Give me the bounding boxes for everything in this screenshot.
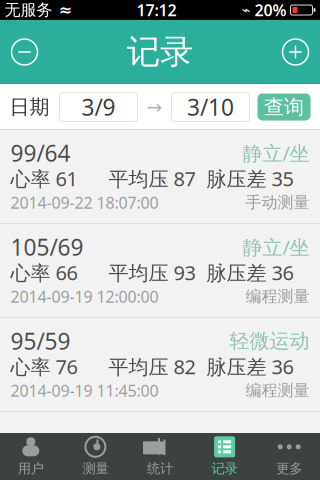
staticText: 2014-09-19 11:45:00 <box>10 380 158 401</box>
button[interactable]: 更多 <box>257 433 320 480</box>
staticText: 静立/坐 <box>242 140 309 166</box>
staticText: 统计 <box>147 460 173 477</box>
staticText: 轻微运动 <box>229 329 309 353</box>
button[interactable]: Add record <box>273 30 317 74</box>
staticText: 脉压差 35 <box>206 165 293 192</box>
staticText: 编程测量 <box>245 287 309 306</box>
staticText: 99/64 <box>10 138 70 168</box>
staticText: 无服务 <box>4 0 52 20</box>
staticText: 手动测量 <box>245 193 309 212</box>
staticText: 105/69 <box>10 232 83 262</box>
button[interactable]: 用户 <box>0 433 63 480</box>
staticText: 记录 <box>127 31 193 72</box>
staticText: 20% <box>250 0 286 21</box>
staticText: 95/59 <box>10 326 70 356</box>
button[interactable]: 查询 <box>257 93 310 120</box>
staticText: ⌁ <box>241 2 250 18</box>
staticText: 日期 <box>9 95 49 119</box>
staticText: 测量 <box>82 460 108 477</box>
staticText: 17:12 <box>136 0 176 21</box>
staticText: 静立/坐 <box>242 234 309 260</box>
button[interactable]: 105/69 <box>0 224 320 318</box>
button[interactable]: 99/64 <box>0 130 320 224</box>
staticText: 用户 <box>18 460 44 477</box>
staticText: 编程测量 <box>245 381 309 400</box>
button[interactable]: 测量 <box>63 433 128 480</box>
staticText: 平均压 93 <box>108 259 195 286</box>
staticText: 2014-09-19 12:00:00 <box>10 286 158 307</box>
staticText: 心率 76 <box>10 353 77 380</box>
staticText: 2014-09-22 18:07:00 <box>10 192 158 213</box>
staticText: 心率 66 <box>10 259 77 286</box>
staticText: 平均压 87 <box>108 165 195 192</box>
button[interactable]: 3/9 <box>59 92 137 121</box>
staticText: → <box>146 96 162 118</box>
staticText: 3/9 <box>81 92 115 122</box>
staticText: 脉压差 36 <box>206 353 293 380</box>
staticText: 心率 61 <box>10 165 77 192</box>
button[interactable]: 统计 <box>128 433 192 480</box>
button[interactable]: Remove record <box>2 30 46 74</box>
staticText: 3/10 <box>187 92 234 122</box>
staticText: ≈ <box>52 1 71 19</box>
button[interactable]: 记录 <box>192 433 257 480</box>
staticText: 更多 <box>276 460 302 477</box>
staticText: 查询 <box>264 95 304 119</box>
button[interactable]: 95/59 <box>0 318 320 412</box>
staticText: 脉压差 36 <box>206 259 293 286</box>
staticText: 记录 <box>212 460 238 477</box>
button[interactable]: 3/10 <box>171 92 249 121</box>
staticText: 平均压 82 <box>108 353 195 380</box>
